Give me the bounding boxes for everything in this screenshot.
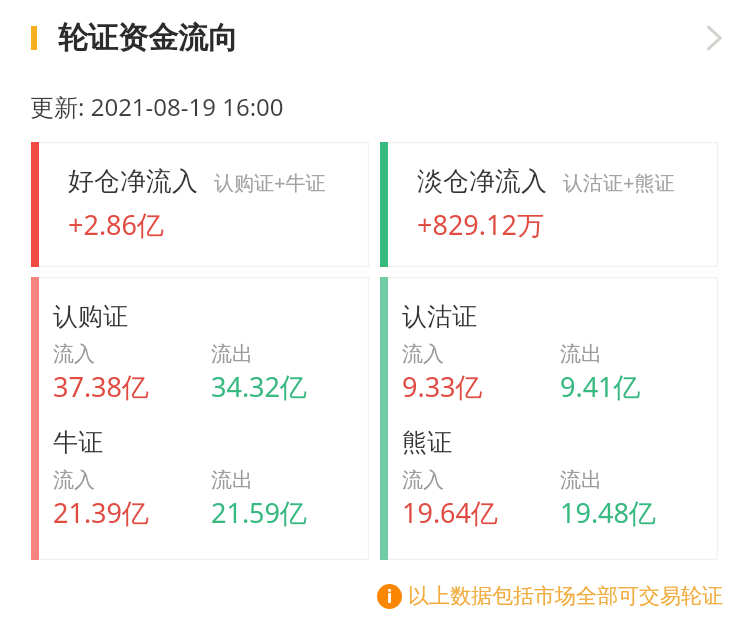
staticText: 19.64亿 bbox=[402, 494, 499, 531]
staticText: 流出 bbox=[560, 467, 602, 493]
staticText: 19.48亿 bbox=[560, 494, 657, 531]
staticText: 认购证 bbox=[53, 301, 128, 332]
staticText: 流出 bbox=[211, 467, 253, 493]
staticText: 流入 bbox=[53, 467, 95, 493]
staticText: 认沽证+熊证 bbox=[563, 169, 675, 196]
staticText: 以上数据包括市场全部可交易轮证 bbox=[408, 583, 723, 609]
staticText: +829.12万 bbox=[417, 206, 544, 243]
button[interactable]: 认沽证 bbox=[380, 277, 718, 560]
button[interactable]: 认购证 bbox=[31, 277, 369, 560]
button[interactable]: 轮证资金流向 bbox=[0, 0, 250, 76]
staticText: 好仓净流入 bbox=[68, 165, 198, 198]
staticText: 流出 bbox=[211, 341, 253, 367]
staticText: 34.32亿 bbox=[211, 368, 308, 405]
button[interactable]: i bbox=[377, 583, 723, 609]
staticText: 流出 bbox=[560, 341, 602, 367]
button[interactable]: 淡仓净流入 bbox=[380, 142, 718, 267]
staticText: 轮证资金流向 bbox=[58, 19, 238, 57]
staticText: 认购证+牛证 bbox=[214, 169, 326, 196]
staticText: 牛证 bbox=[53, 427, 103, 458]
staticText: 流入 bbox=[53, 341, 95, 367]
staticText: 流入 bbox=[402, 341, 444, 367]
staticText: 淡仓净流入 bbox=[417, 165, 547, 198]
staticText: +2.86亿 bbox=[68, 206, 165, 243]
staticText: 9.41亿 bbox=[560, 368, 641, 405]
button[interactable]: 好仓净流入 bbox=[31, 142, 369, 267]
staticText: 认沽证 bbox=[402, 301, 477, 332]
staticText: 21.59亿 bbox=[211, 494, 308, 531]
staticText: 37.38亿 bbox=[53, 368, 150, 405]
staticText: 9.33亿 bbox=[402, 368, 483, 405]
button[interactable]: More bbox=[688, 11, 742, 65]
staticText: 流入 bbox=[402, 467, 444, 493]
staticText: 21.39亿 bbox=[53, 494, 150, 531]
staticText: 更新: 2021-08-19 16:00 bbox=[30, 90, 284, 123]
staticText: i bbox=[387, 585, 393, 608]
staticText: 熊证 bbox=[402, 427, 452, 458]
